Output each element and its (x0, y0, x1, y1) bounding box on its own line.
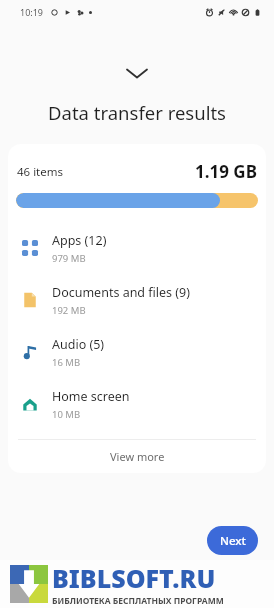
staticText: Home screen (52, 388, 130, 405)
staticText: 10:19 (20, 6, 44, 18)
staticText: Audio (5) (52, 336, 105, 353)
staticText: 1.19 GB (195, 160, 257, 183)
staticText: 979 MB (52, 252, 86, 265)
staticText: 46 items (17, 164, 64, 180)
staticText: View more (110, 449, 165, 464)
staticText: Data transfer results (0, 100, 274, 125)
button[interactable]: Collapse (120, 62, 154, 84)
button[interactable]: View more (8, 440, 266, 473)
button[interactable]: Audio (5) (8, 326, 266, 378)
staticText: 192 MB (52, 304, 86, 317)
staticText: Apps (12) (52, 232, 107, 249)
button[interactable]: Home screen (8, 378, 266, 430)
staticText: Documents and files (9) (52, 284, 190, 301)
staticText: 10 MB (52, 408, 81, 421)
button[interactable]: Next (207, 526, 258, 555)
button[interactable]: Documents and files (9) (8, 274, 266, 326)
staticText: BIBLSOFT.RU (52, 561, 216, 595)
staticText: 16 MB (52, 356, 81, 369)
button[interactable]: Apps (12) (8, 222, 266, 274)
staticText: БИБЛИОТЕКА БЕСПЛАТНЫХ ПРОГРАММ (52, 595, 224, 607)
staticText: Next (220, 533, 246, 549)
